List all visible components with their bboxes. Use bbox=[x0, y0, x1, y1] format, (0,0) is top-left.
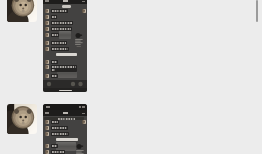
button[interactable]: Chat message with screenshot bbox=[7, 104, 87, 154]
button[interactable]: Chat message with screenshot bbox=[7, 0, 87, 92]
button[interactable]: Shared screenshot bbox=[43, 0, 87, 92]
button[interactable]: Shared screenshot bbox=[43, 104, 87, 154]
button[interactable]: Profile photo bbox=[7, 0, 37, 22]
button[interactable]: Profile photo bbox=[7, 104, 37, 134]
